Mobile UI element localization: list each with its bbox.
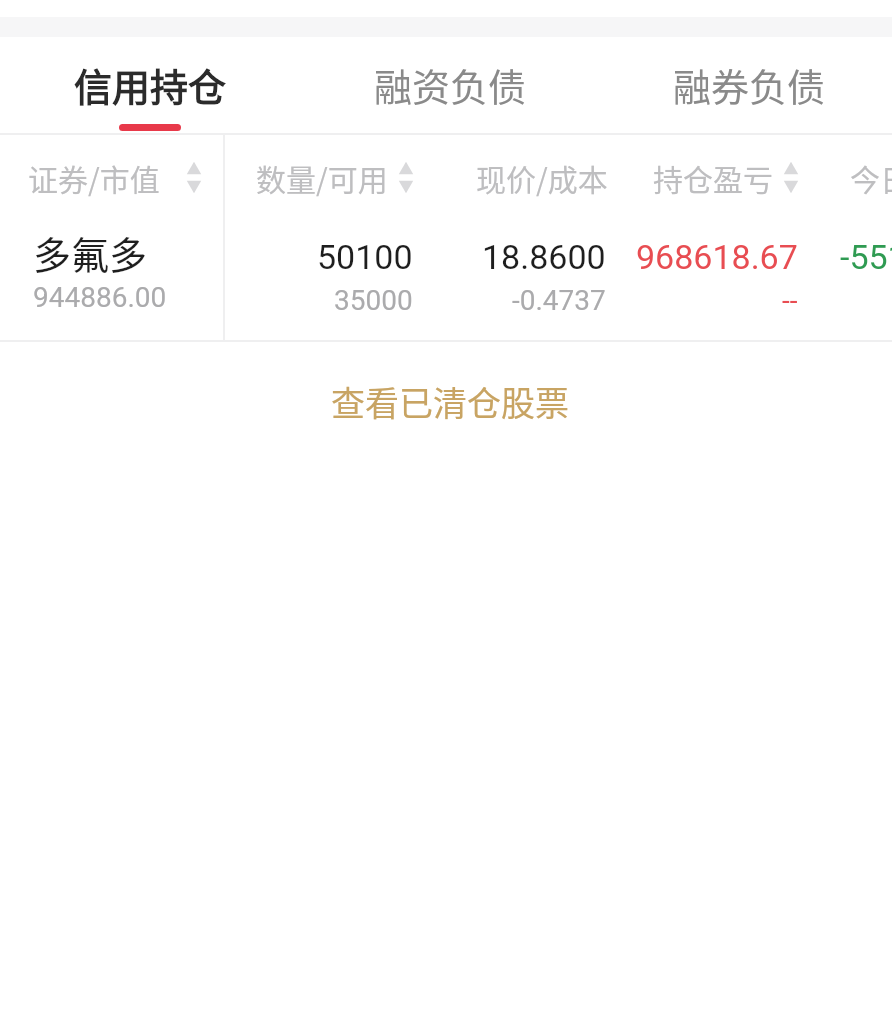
staticText: 查看已清仓股票	[331, 377, 569, 426]
staticText: 信用持仓	[74, 57, 227, 112]
staticText: 968618.67	[636, 237, 798, 277]
button[interactable]: 今日盈亏	[798, 134, 892, 220]
button[interactable]: 数量/可用	[223, 134, 413, 220]
staticText: 融资负债	[374, 57, 527, 112]
staticText: 多氟多	[33, 225, 148, 280]
button[interactable]: 现价/成本	[415, 134, 608, 220]
staticText: 现价/成本	[476, 156, 608, 199]
staticText: 35000	[334, 284, 413, 317]
staticText: 944886.00	[33, 281, 167, 314]
button[interactable]: 融资负债	[299, 37, 596, 133]
staticText: 持仓盈亏	[653, 156, 773, 199]
staticText: 融券负债	[673, 57, 826, 112]
other: Selected tab	[119, 124, 181, 131]
staticText: --	[782, 284, 798, 317]
staticText: 证券/市值	[28, 156, 160, 199]
button[interactable]: 证券/市值	[0, 134, 223, 220]
button[interactable]: 融券负债	[596, 37, 892, 133]
staticText: 数量/可用	[256, 156, 388, 199]
staticText: 今日盈亏	[850, 156, 892, 199]
staticText: 18.8600	[482, 237, 606, 277]
staticText: -55176.00	[840, 237, 892, 277]
staticText: -0.4737	[512, 284, 606, 317]
button[interactable]: 持仓盈亏	[606, 134, 798, 220]
button[interactable]: 查看已清仓股票	[0, 342, 892, 464]
staticText: 50100	[317, 237, 413, 277]
button[interactable]: 多氟多	[0, 220, 892, 341]
button[interactable]: 信用持仓	[1, 37, 299, 133]
